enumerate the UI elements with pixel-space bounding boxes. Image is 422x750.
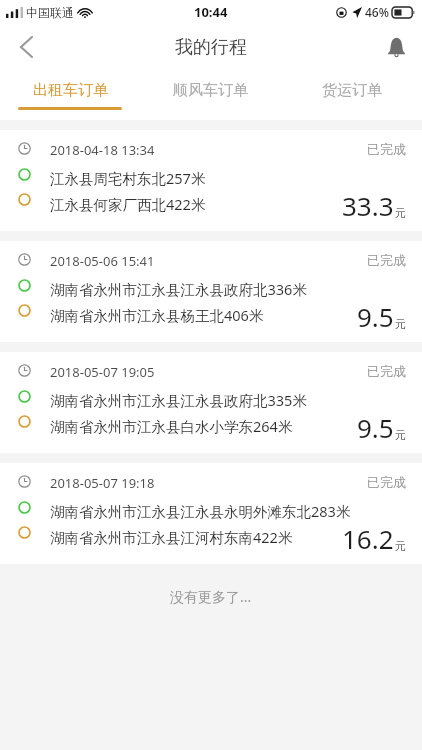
staticText: 元	[395, 428, 406, 442]
staticText: 湖南省永州市江永县杨王北406米	[50, 305, 264, 325]
staticText: 已完成	[367, 474, 406, 490]
button[interactable]: Back	[0, 24, 52, 70]
staticText: 出租车订单	[33, 81, 108, 100]
staticText: 已完成	[367, 363, 406, 379]
staticText: 元	[395, 317, 406, 331]
button[interactable]: Notifications	[370, 24, 422, 70]
button[interactable]: 顺风车订单	[140, 70, 281, 120]
staticText: 湖南省永州市江永县江永县政府北335米	[50, 390, 307, 410]
staticText: 46%	[365, 4, 389, 20]
staticText: 9.5	[357, 410, 394, 445]
staticText: 我的行程	[175, 36, 247, 59]
staticText: 顺风车订单	[173, 81, 248, 100]
button[interactable]: 2018-05-07 19:18	[0, 463, 422, 564]
staticText: 16.2	[342, 521, 394, 556]
staticText: 10:44	[194, 3, 228, 21]
staticText: 江永县周宅村东北257米	[50, 168, 206, 188]
staticText: 已完成	[367, 252, 406, 268]
button[interactable]: 2018-05-06 15:41	[0, 241, 422, 342]
staticText: 货运订单	[322, 81, 382, 100]
button[interactable]: 2018-05-07 19:05	[0, 352, 422, 453]
button[interactable]: 2018-04-18 13:34	[0, 130, 422, 231]
button[interactable]: 出租车订单	[0, 70, 140, 120]
staticText: 湖南省永州市江永县江永县政府北336米	[50, 279, 307, 299]
staticText: 湖南省永州市江永县江河村东南422米	[50, 527, 293, 547]
staticText: 2018-04-18 13:34	[50, 141, 155, 159]
staticText: 元	[395, 539, 406, 553]
staticText: 已完成	[367, 141, 406, 157]
staticText: 中国联通	[26, 5, 74, 20]
staticText: 江永县何家厂西北422米	[50, 194, 206, 214]
staticText: 9.5	[357, 299, 394, 334]
button[interactable]: 货运订单	[281, 70, 422, 120]
staticText: 湖南省永州市江永县江永县永明外滩东北283米	[50, 501, 351, 521]
staticText: 2018-05-07 19:05	[50, 363, 155, 381]
staticText: 元	[395, 206, 406, 220]
staticText: 湖南省永州市江永县白水小学东264米	[50, 416, 293, 436]
staticText: 2018-05-06 15:41	[50, 252, 155, 270]
staticText: 33.3	[342, 188, 394, 223]
staticText: 没有更多了...	[170, 587, 252, 606]
staticText: 2018-05-07 19:18	[50, 474, 155, 492]
